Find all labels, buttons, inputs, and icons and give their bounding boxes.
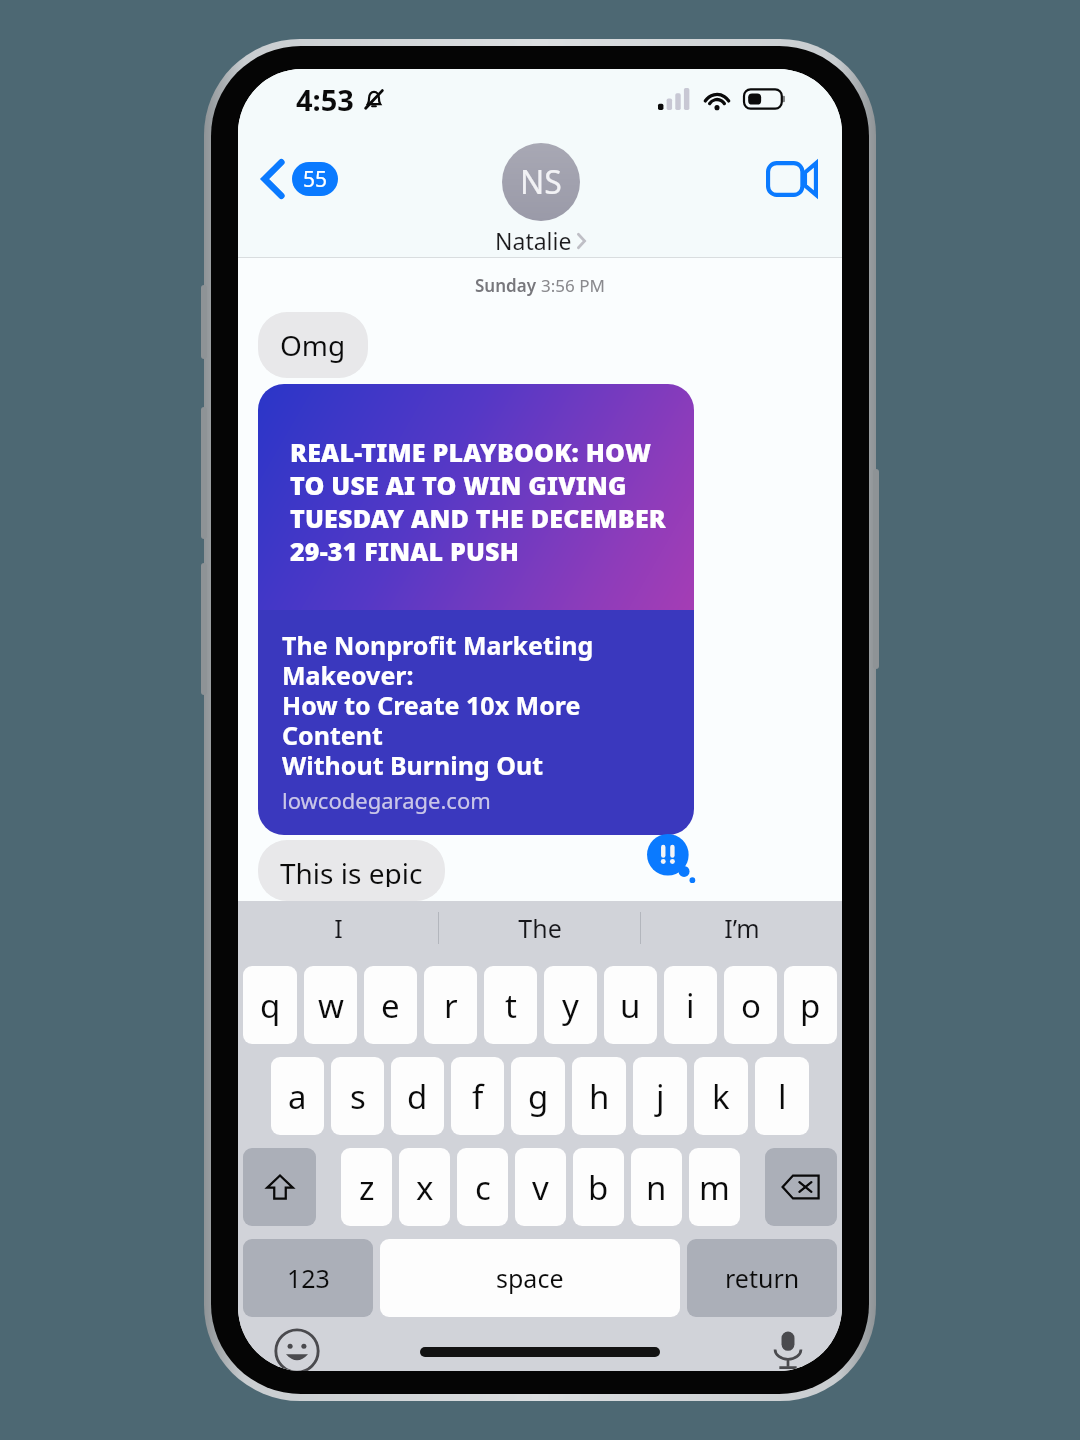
- button[interactable]: h: [572, 1057, 626, 1135]
- button[interactable]: space: [380, 1239, 680, 1317]
- button[interactable]: o: [724, 966, 777, 1044]
- button[interactable]: NS: [495, 143, 586, 256]
- button[interactable]: m: [689, 1148, 740, 1226]
- staticText: t: [505, 983, 517, 1028]
- button[interactable]: y: [544, 966, 597, 1044]
- staticText: r: [444, 983, 458, 1028]
- button[interactable]: Back to 55 conversations: [238, 152, 348, 206]
- staticText: return: [725, 1261, 800, 1295]
- button[interactable]: Omg: [258, 312, 368, 378]
- button[interactable]: The: [439, 901, 640, 955]
- staticText: m: [699, 1165, 730, 1210]
- staticText: I: [334, 911, 343, 945]
- staticText: space: [496, 1261, 564, 1295]
- button[interactable]: i: [664, 966, 717, 1044]
- button[interactable]: g: [511, 1057, 565, 1135]
- staticText: u: [620, 983, 641, 1028]
- staticText: o: [741, 983, 761, 1028]
- staticText: f: [472, 1074, 484, 1119]
- button[interactable]: This is epic: [258, 840, 445, 901]
- button[interactable]: j: [633, 1057, 687, 1135]
- button[interactable]: Exclamation tapback: [646, 834, 698, 886]
- button[interactable]: n: [631, 1148, 682, 1226]
- staticText: NS: [520, 160, 562, 204]
- staticText: lowcodegarage.com: [282, 785, 491, 815]
- button[interactable]: w: [304, 966, 357, 1044]
- staticText: 4:53: [296, 80, 354, 119]
- button[interactable]: l: [755, 1057, 809, 1135]
- button[interactable]: I’m: [641, 901, 842, 955]
- button[interactable]: v: [515, 1148, 566, 1226]
- staticText: v: [532, 1165, 549, 1210]
- staticText: z: [359, 1165, 375, 1210]
- button[interactable]: q: [243, 966, 297, 1044]
- staticText: s: [350, 1074, 366, 1119]
- staticText: Omg: [280, 326, 346, 364]
- staticText: q: [260, 983, 281, 1028]
- button[interactable]: p: [784, 966, 837, 1044]
- staticText: Natalie: [495, 225, 572, 256]
- button[interactable]: s: [331, 1057, 384, 1135]
- button[interactable]: Dictation: [770, 1329, 806, 1371]
- staticText: Sunday: [475, 274, 541, 297]
- staticText: b: [588, 1165, 609, 1210]
- staticText: n: [646, 1165, 667, 1210]
- staticText: 123: [287, 1261, 330, 1295]
- button[interactable]: r: [424, 966, 477, 1044]
- button[interactable]: t: [484, 966, 537, 1044]
- button[interactable]: k: [694, 1057, 748, 1135]
- staticText: c: [475, 1165, 491, 1210]
- staticText: p: [800, 983, 821, 1028]
- staticText: 3:56 PM: [541, 274, 605, 297]
- staticText: i: [686, 983, 695, 1028]
- button[interactable]: Emoji keyboard: [274, 1331, 320, 1371]
- staticText: 55: [303, 165, 328, 194]
- button[interactable]: Shift: [243, 1148, 316, 1226]
- staticText: e: [381, 983, 400, 1028]
- staticText: y: [562, 983, 579, 1028]
- button[interactable]: FaceTime video call: [752, 151, 842, 207]
- button[interactable]: f: [451, 1057, 504, 1135]
- button[interactable]: u: [604, 966, 657, 1044]
- button[interactable]: x: [399, 1148, 450, 1226]
- button[interactable]: e: [364, 966, 417, 1044]
- staticText: d: [407, 1074, 428, 1119]
- staticText: j: [656, 1074, 665, 1119]
- button[interactable]: I: [238, 901, 438, 955]
- staticText: l: [778, 1074, 787, 1119]
- button[interactable]: z: [341, 1148, 392, 1226]
- staticText: REAL-TIME PLAYBOOK: HOW TO USE AI TO WIN…: [290, 435, 668, 568]
- button[interactable]: REAL-TIME PLAYBOOK: HOW TO USE AI TO WIN…: [258, 384, 694, 835]
- staticText: x: [416, 1165, 434, 1210]
- staticText: g: [528, 1074, 549, 1119]
- button[interactable]: 123: [243, 1239, 373, 1317]
- staticText: a: [288, 1074, 307, 1119]
- staticText: w: [318, 983, 344, 1028]
- button[interactable]: Backspace: [765, 1148, 837, 1226]
- button[interactable]: c: [457, 1148, 508, 1226]
- staticText: This is epic: [280, 854, 423, 887]
- button[interactable]: b: [573, 1148, 624, 1226]
- staticText: The Nonprofit Marketing Makeover: How to…: [282, 628, 674, 782]
- button[interactable]: a: [271, 1057, 324, 1135]
- staticText: h: [589, 1074, 610, 1119]
- staticText: k: [712, 1074, 730, 1119]
- staticText: I’m: [724, 911, 760, 945]
- button[interactable]: d: [391, 1057, 444, 1135]
- button[interactable]: return: [687, 1239, 837, 1317]
- staticText: The: [518, 911, 562, 945]
